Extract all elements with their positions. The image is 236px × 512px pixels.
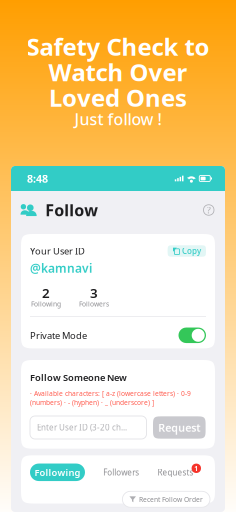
button[interactable]: Following (30, 464, 85, 481)
staticText: Your User ID (30, 245, 85, 257)
staticText: 3 (90, 284, 98, 302)
staticText: Just follow ! (74, 108, 161, 130)
button[interactable]: Followers (103, 467, 139, 478)
staticText: · Available characters: [ a-z (lowercase… (30, 389, 191, 398)
staticText: Request (158, 420, 200, 435)
staticText: Followers (79, 300, 109, 308)
staticText: Recent Follow Order (139, 495, 203, 504)
staticText: Copy (182, 246, 201, 256)
staticText: Following (34, 466, 80, 478)
button[interactable]: Recent Follow Order (122, 491, 210, 507)
staticText: @kamnavi (30, 260, 92, 276)
staticText: Follow Someone New (30, 371, 127, 384)
staticText: Enter User ID (3-20 ch... (37, 422, 127, 433)
staticText: Safety Check to (26, 31, 209, 62)
staticText: 2 (42, 284, 50, 302)
button[interactable]: Requests (158, 467, 203, 478)
staticText: Followers (103, 467, 139, 478)
staticText: 1 (194, 464, 198, 473)
button[interactable]: Copy (168, 245, 206, 257)
staticText: Requests (158, 467, 194, 478)
staticText: 8:48 (27, 171, 48, 186)
staticText: ? (207, 204, 211, 216)
staticText: Follow (45, 199, 98, 221)
staticText: (numbers) · - (hyphen) · _ (underscore) … (30, 398, 154, 407)
staticText: Following (31, 300, 61, 308)
button[interactable]: Request (153, 416, 206, 439)
button[interactable]: Help (203, 205, 214, 215)
staticText: Watch Over (48, 56, 187, 88)
staticText: Private Mode (30, 329, 87, 341)
staticText: Loved Ones (49, 82, 187, 113)
